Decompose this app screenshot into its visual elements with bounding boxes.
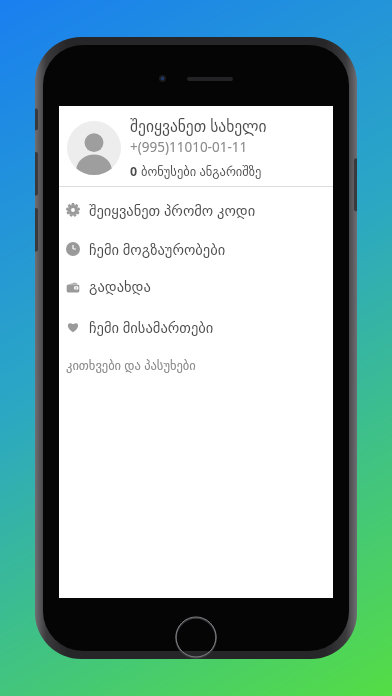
button[interactable]: Home — [174, 617, 218, 659]
button[interactable]: შეიყვანეთ სახელი — [59, 106, 333, 186]
button[interactable]: შეიყვანეთ პრომო კოდი — [59, 190, 333, 229]
button[interactable]: ჩემი მოგზაურობები — [59, 229, 333, 268]
staticText: ჩემი მისამართები — [89, 317, 214, 337]
button[interactable]: გადახდა — [59, 268, 333, 307]
staticText: შეიყვანეთ სახელი — [130, 115, 267, 136]
staticText: გადახდა — [89, 279, 151, 296]
staticText: კითხვები და პასუხები — [66, 357, 196, 374]
staticText: შეიყვანეთ პრომო კოდი — [89, 200, 256, 220]
button[interactable]: ჩემი მისამართები — [59, 307, 333, 346]
staticText: ჩემი მოგზაურობები — [89, 239, 226, 259]
staticText: ბონუსები ანგარიშზე — [141, 163, 262, 180]
staticText: +(995)11010-01-11 — [130, 138, 248, 156]
staticText: 0 — [130, 163, 138, 180]
button[interactable]: კითხვები და პასუხები — [59, 352, 333, 378]
